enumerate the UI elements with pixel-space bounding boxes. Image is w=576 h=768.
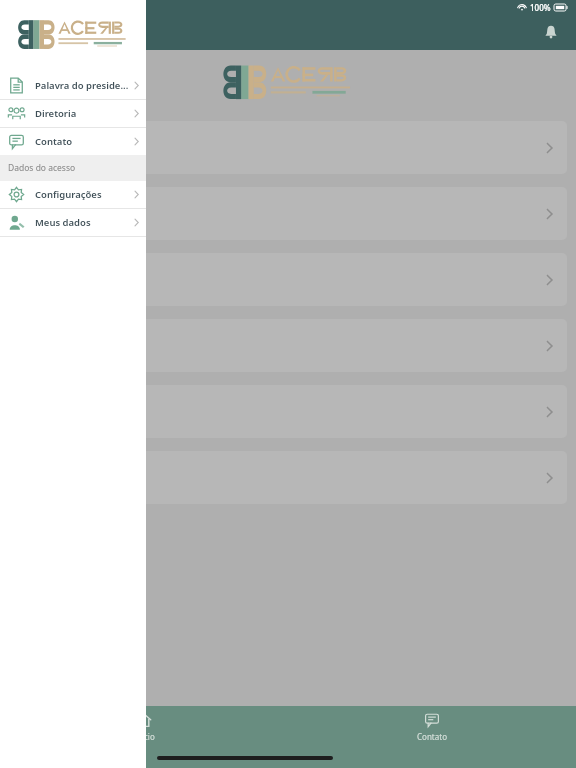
staticText: Consultas SPC/CPC bbox=[23, 140, 546, 155]
staticText bbox=[23, 470, 546, 485]
staticText: Contato bbox=[35, 135, 134, 148]
button[interactable] bbox=[9, 319, 567, 372]
staticText: Registro de cheques bbox=[23, 206, 546, 221]
button[interactable] bbox=[9, 451, 567, 504]
button[interactable]: Configurações bbox=[0, 181, 146, 208]
button[interactable]: Início bbox=[0, 706, 288, 748]
button[interactable]: Consultas SPC/CPC bbox=[9, 121, 567, 174]
button[interactable]: Contato bbox=[288, 706, 576, 748]
staticText bbox=[23, 404, 546, 419]
staticText: Meus dados bbox=[35, 216, 134, 229]
staticText: 100% bbox=[530, 2, 551, 13]
staticText bbox=[23, 272, 546, 287]
staticText bbox=[23, 338, 546, 353]
staticText: Diretoria bbox=[35, 107, 134, 120]
button[interactable]: Registro de cheques bbox=[9, 187, 567, 240]
button[interactable]: Meus dados bbox=[0, 209, 146, 236]
staticText: Dados do acesso bbox=[8, 162, 76, 174]
staticText: Configurações bbox=[35, 188, 134, 201]
staticText: Palavra do preside... bbox=[35, 79, 134, 92]
staticText: Contato bbox=[417, 731, 447, 742]
button[interactable]: Palavra do preside... bbox=[0, 72, 146, 99]
staticText: Início bbox=[134, 731, 155, 742]
button[interactable]: Notificações bbox=[536, 17, 566, 47]
button[interactable]: Diretoria bbox=[0, 100, 146, 127]
button[interactable] bbox=[9, 385, 567, 438]
button[interactable] bbox=[9, 253, 567, 306]
button[interactable]: Contato bbox=[0, 128, 146, 155]
